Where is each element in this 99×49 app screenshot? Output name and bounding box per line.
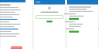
staticText: Continue bbox=[11, 45, 22, 49]
button[interactable]: Action bbox=[69, 18, 79, 20]
button[interactable]: Back bbox=[35, 1, 40, 3]
button[interactable]: Submit bbox=[46, 21, 52, 22]
button[interactable]: Action 2 bbox=[69, 31, 79, 33]
button[interactable]: Continue bbox=[10, 46, 22, 49]
